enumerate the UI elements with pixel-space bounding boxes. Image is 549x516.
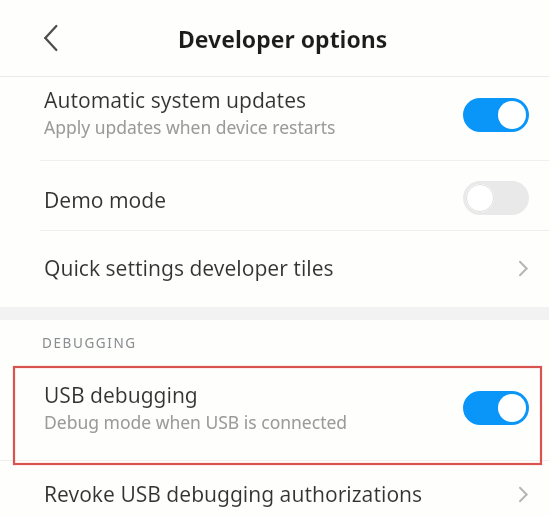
staticText: Revoke USB debugging authorizations <box>44 480 423 509</box>
button[interactable]: Revoke USB debugging authorizations <box>0 461 549 516</box>
button[interactable]: Demo mode <box>0 161 549 230</box>
staticText: USB debugging <box>44 381 198 410</box>
button[interactable]: Quick settings developer tiles <box>0 231 549 307</box>
button[interactable] <box>44 25 57 51</box>
staticText: Quick settings developer tiles <box>44 254 334 283</box>
button[interactable] <box>463 391 529 425</box>
staticText: Debug mode when USB is connected <box>44 410 348 434</box>
staticText: DEBUGGING <box>42 334 137 352</box>
button[interactable]: Automatic system updates <box>0 77 549 160</box>
button[interactable] <box>463 181 529 215</box>
staticText: Demo mode <box>44 186 167 215</box>
button[interactable] <box>463 98 529 132</box>
staticText: Automatic system updates <box>44 86 307 115</box>
staticText: Developer options <box>178 23 388 54</box>
staticText: Apply updates when device restarts <box>44 115 336 139</box>
button[interactable]: USB debugging <box>0 366 549 460</box>
